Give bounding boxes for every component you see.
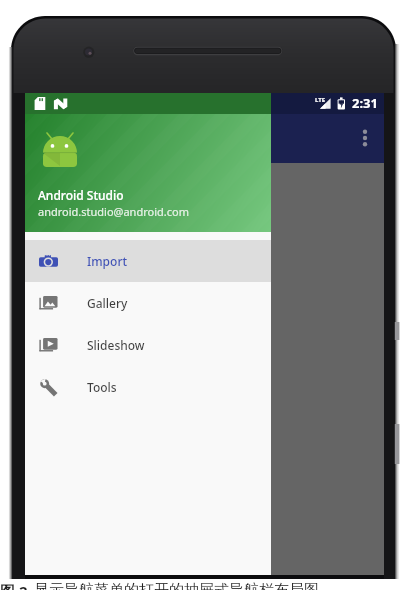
staticText: 2:31 bbox=[352, 94, 378, 112]
button[interactable]: Gallery bbox=[25, 282, 271, 324]
staticText: android.studio@android.com bbox=[38, 204, 189, 219]
button[interactable]: More options bbox=[353, 124, 377, 152]
staticText: 图 2 bbox=[0, 581, 28, 590]
button[interactable]: Tools bbox=[25, 366, 271, 408]
staticText: 显示导航菜单的打开的抽屉式导航栏布局图 bbox=[34, 581, 319, 590]
staticText: Android Studio bbox=[38, 187, 124, 203]
button[interactable]: Slideshow bbox=[25, 324, 271, 366]
staticText: LTE bbox=[315, 96, 326, 104]
staticText: Slideshow bbox=[87, 337, 145, 353]
staticText: Tools bbox=[87, 379, 117, 395]
staticText: Import bbox=[87, 253, 128, 269]
staticText: Gallery bbox=[87, 295, 128, 311]
button[interactable]: Import bbox=[25, 240, 271, 282]
